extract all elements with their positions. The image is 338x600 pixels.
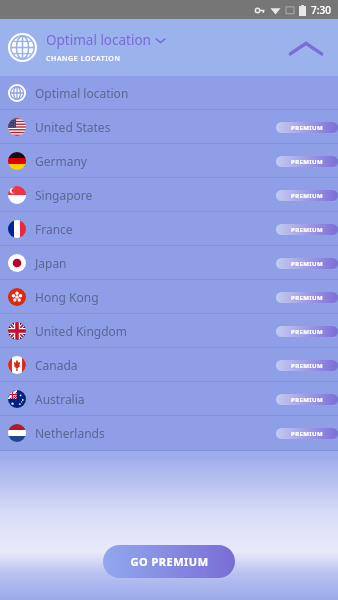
staticText: Singapore: [35, 187, 93, 203]
button[interactable]: Collapse: [284, 26, 328, 70]
staticText: GO PREMIUM: [130, 554, 209, 569]
staticText: United Kingdom: [35, 323, 128, 339]
staticText: Japan: [35, 255, 67, 271]
button[interactable]: Netherlands: [0, 416, 338, 450]
button[interactable]: Germany: [0, 144, 338, 178]
staticText: Optimal location: [35, 85, 129, 101]
button[interactable]: Optimal location: [0, 76, 338, 110]
staticText: PREMIUM: [291, 158, 324, 166]
staticText: PREMIUM: [291, 396, 324, 404]
staticText: CHANGE LOCATION: [46, 54, 121, 64]
button[interactable]: Japan: [0, 246, 338, 280]
staticText: PREMIUM: [291, 124, 324, 132]
staticText: PREMIUM: [291, 294, 324, 302]
staticText: Optimal location: [46, 31, 151, 49]
staticText: PREMIUM: [291, 192, 324, 200]
button[interactable]: GO PREMIUM: [103, 545, 235, 578]
staticText: PREMIUM: [291, 226, 324, 234]
staticText: Germany: [35, 153, 87, 169]
staticText: PREMIUM: [291, 362, 324, 370]
button[interactable]: United Kingdom: [0, 314, 338, 348]
button[interactable]: Hong Kong: [0, 280, 338, 314]
staticText: Netherlands: [35, 425, 105, 441]
staticText: PREMIUM: [291, 328, 324, 336]
staticText: Australia: [35, 391, 85, 407]
staticText: Canada: [35, 357, 78, 373]
button[interactable]: Optimal location: [46, 31, 165, 49]
staticText: PREMIUM: [291, 260, 324, 268]
button[interactable]: Singapore: [0, 178, 338, 212]
staticText: France: [35, 221, 73, 237]
staticText: PREMIUM: [291, 430, 324, 438]
button[interactable]: France: [0, 212, 338, 246]
button[interactable]: Australia: [0, 382, 338, 416]
staticText: 7:30: [311, 3, 331, 17]
button[interactable]: Canada: [0, 348, 338, 382]
staticText: Hong Kong: [35, 289, 99, 305]
staticText: United States: [35, 119, 111, 135]
other: Globe: [8, 33, 37, 62]
button[interactable]: United States: [0, 110, 338, 144]
